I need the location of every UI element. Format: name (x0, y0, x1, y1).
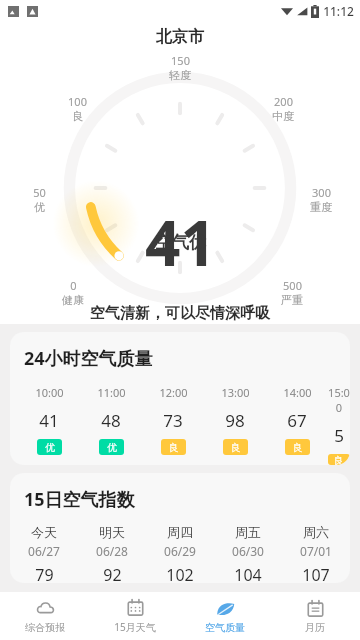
staticText: 良 (334, 454, 344, 465)
staticText: 周四 (167, 524, 193, 540)
staticText: 15日空气指数 (24, 487, 350, 512)
staticText: 300 (312, 185, 331, 200)
staticText: 重度 (310, 200, 332, 214)
button[interactable]: 月历 (270, 592, 360, 640)
staticText: 10:00 (35, 385, 64, 400)
staticText: 北京市 (156, 27, 204, 47)
staticText: 0 (70, 278, 77, 293)
staticText: 50 (33, 185, 46, 200)
staticText: 明天 (99, 524, 125, 540)
staticText: 11:12 (323, 3, 354, 19)
staticText: 15:00 (328, 385, 350, 415)
staticText: 5 (334, 424, 344, 447)
staticText: 107 (302, 564, 330, 583)
staticText: 500 (283, 278, 302, 293)
staticText: 健康 (62, 293, 84, 307)
staticText: 73 (163, 409, 183, 432)
staticText: 06/28 (96, 543, 128, 559)
staticText: 15月天气 (114, 620, 156, 634)
staticText: 空气质量 (205, 621, 245, 634)
staticText: 良 (169, 441, 179, 454)
staticText: 严重 (281, 293, 303, 307)
staticText: 79 (35, 564, 54, 583)
staticText: 92 (103, 564, 122, 583)
staticText: 综合预报 (25, 621, 65, 634)
button[interactable]: 空气质量 (180, 592, 270, 640)
staticText: 24小时空气质量 (24, 346, 350, 371)
staticText: 优 (45, 441, 55, 454)
staticText: 102 (166, 564, 194, 583)
staticText: 41 (39, 409, 59, 432)
staticText: 150 (171, 53, 190, 68)
staticText: 良 (231, 441, 241, 454)
staticText: 200 (274, 94, 293, 109)
staticText: 良 (293, 441, 303, 454)
staticText: 41 (145, 200, 216, 284)
staticText: 良 (72, 109, 83, 123)
staticText: 今天 (31, 524, 57, 540)
button[interactable]: 15日空气指数 (10, 473, 350, 583)
staticText: 06/27 (28, 543, 60, 559)
staticText: 104 (234, 564, 262, 583)
staticText: 98 (225, 409, 245, 432)
button[interactable]: 综合预报 (0, 592, 90, 640)
staticText: 07/01 (300, 543, 332, 559)
staticText: 轻度 (169, 68, 191, 82)
staticText: 周五 (235, 524, 261, 540)
staticText: 13:00 (221, 385, 250, 400)
staticText: 06/29 (164, 543, 196, 559)
staticText: 空气清新，可以尽情深呼吸 (90, 304, 270, 323)
staticText: 14:00 (283, 385, 312, 400)
button[interactable]: 15月天气 (90, 592, 180, 640)
staticText: 67 (287, 409, 307, 432)
staticText: 优 (34, 200, 45, 214)
staticText: 12:00 (159, 385, 188, 400)
staticText: 06/30 (232, 543, 264, 559)
staticText: 中度 (272, 109, 294, 123)
staticText: 周六 (303, 524, 329, 540)
staticText: 月历 (305, 621, 325, 634)
staticText: 空气优 (155, 232, 206, 253)
staticText: 11:00 (97, 385, 126, 400)
staticText: 优 (107, 441, 117, 454)
button[interactable]: 24小时空气质量 (10, 332, 350, 465)
staticText: 100 (68, 94, 87, 109)
staticText: 48 (101, 409, 121, 432)
